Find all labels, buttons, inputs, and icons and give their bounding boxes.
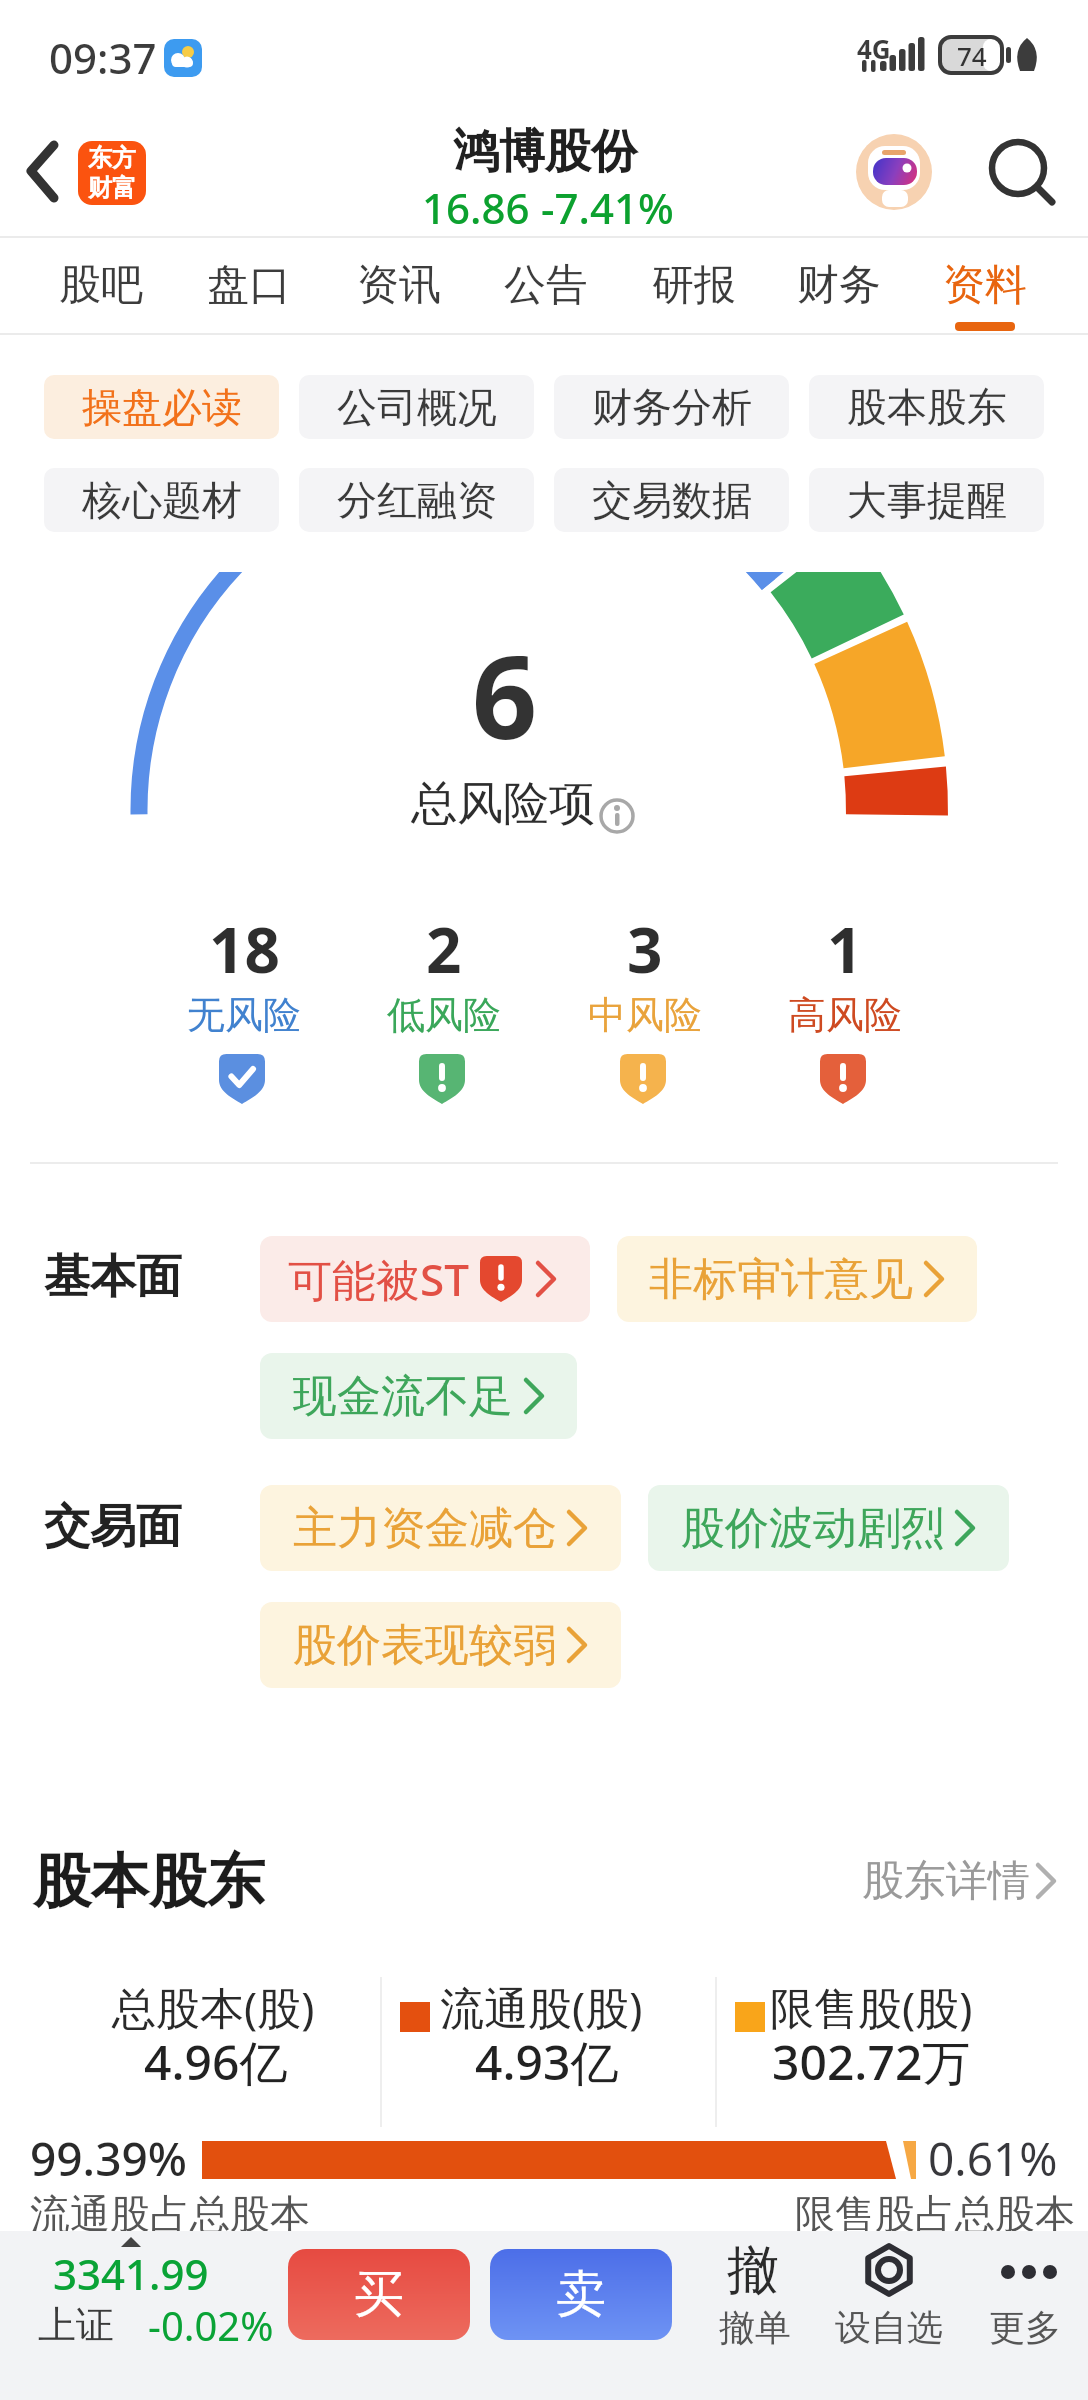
staticText: 鸿博股份 xyxy=(453,123,637,181)
staticText: 上证 xyxy=(38,2301,114,2349)
button[interactable]: 公司概况 xyxy=(299,375,534,439)
staticText: 设自选 xyxy=(835,2305,943,2350)
staticText: 撤单 xyxy=(719,2305,791,2350)
staticText: 操盘必读 xyxy=(82,382,242,432)
button[interactable]: 大事提醒 xyxy=(809,468,1044,532)
staticText: 09:37 xyxy=(49,29,157,86)
button[interactable]: 交易数据 xyxy=(554,468,789,532)
staticText: 可能被ST xyxy=(288,1249,469,1309)
staticText: 0.61% xyxy=(928,2127,1058,2190)
staticText: 限售股(股) xyxy=(770,1977,973,2037)
staticText: 总股本(股) xyxy=(112,1977,315,2037)
button[interactable]: 操盘必读 xyxy=(44,375,279,439)
staticText: 股本股东 xyxy=(847,382,1007,432)
staticText: 74 xyxy=(957,38,987,73)
button[interactable] xyxy=(830,2240,950,2360)
button[interactable]: 股本股东 xyxy=(809,375,1044,439)
button[interactable] xyxy=(24,142,64,202)
staticText: 股本股东 xyxy=(33,1845,265,1918)
staticText: -0.02% xyxy=(148,2298,274,2352)
staticText: 资料 xyxy=(943,259,1027,312)
button[interactable] xyxy=(20,2240,270,2360)
button[interactable]: 资讯 xyxy=(329,244,469,326)
button[interactable]: 买 xyxy=(288,2249,470,2340)
button[interactable] xyxy=(260,1602,621,1688)
staticText: 中风险 xyxy=(588,991,702,1039)
staticText: 股东详情 xyxy=(862,1855,1030,1908)
button[interactable]: 财务分析 xyxy=(554,375,789,439)
staticText: 资讯 xyxy=(357,259,441,312)
staticText: 交易面 xyxy=(44,1498,182,1556)
button[interactable] xyxy=(648,1485,1009,1571)
button[interactable] xyxy=(617,1236,977,1322)
staticText: 限售股占总股本 xyxy=(795,2189,1075,2239)
staticText: 总风险项 xyxy=(411,775,595,833)
staticText: 2 xyxy=(426,907,462,991)
button[interactable]: 核心题材 xyxy=(44,468,279,532)
button[interactable] xyxy=(975,2240,1085,2360)
staticText: 6 xyxy=(472,617,538,772)
staticText: 财富 xyxy=(88,173,136,203)
staticText: 主力资金减仓 xyxy=(293,1501,557,1556)
staticText: 股价波动剧烈 xyxy=(681,1501,945,1556)
staticText: 18 xyxy=(209,907,280,991)
button[interactable]: 财务 xyxy=(769,244,909,326)
staticText: 撤 xyxy=(727,2238,779,2304)
staticText: 基本面 xyxy=(44,1248,182,1306)
button[interactable] xyxy=(700,2240,810,2360)
staticText: 大事提醒 xyxy=(847,475,1007,525)
staticText: 流通股(股) xyxy=(440,1977,643,2037)
button[interactable] xyxy=(260,1236,590,1322)
button[interactable] xyxy=(856,134,932,210)
button[interactable]: 公告 xyxy=(476,244,616,326)
button[interactable]: 资料 xyxy=(915,244,1055,326)
staticText: 更多 xyxy=(989,2305,1061,2350)
staticText: 财务分析 xyxy=(592,382,752,432)
staticText: 无风险 xyxy=(187,991,301,1039)
staticText: 低风险 xyxy=(387,991,501,1039)
button[interactable] xyxy=(260,1353,577,1439)
staticText: 财务 xyxy=(797,259,881,312)
staticText: 东方 xyxy=(88,143,136,173)
staticText: 3341.99 xyxy=(53,2245,209,2302)
staticText: 盘口 xyxy=(207,259,291,312)
staticText: 4.96亿 xyxy=(144,2029,288,2095)
button[interactable]: 分红融资 xyxy=(299,468,534,532)
button[interactable]: 卖 xyxy=(490,2249,672,2340)
button[interactable] xyxy=(260,1485,621,1571)
button[interactable] xyxy=(988,138,1056,206)
staticText: 公告 xyxy=(504,259,588,312)
staticText: 买 xyxy=(354,2263,404,2326)
staticText: 4G xyxy=(857,31,891,66)
staticText: 卖 xyxy=(556,2263,606,2326)
button[interactable]: 研报 xyxy=(624,244,764,326)
staticText: 16.86 xyxy=(422,179,530,236)
staticText: 公司概况 xyxy=(337,382,497,432)
staticText: 分红融资 xyxy=(337,475,497,525)
staticText: -7.41% xyxy=(541,179,674,236)
staticText: 非标审计意见 xyxy=(649,1252,913,1307)
staticText: 现金流不足 xyxy=(293,1369,513,1424)
staticText: 研报 xyxy=(652,259,736,312)
staticText: 股价表现较弱 xyxy=(293,1618,557,1673)
button[interactable]: 东方 xyxy=(78,141,146,205)
staticText: 3 xyxy=(627,907,663,991)
staticText: 高风险 xyxy=(788,991,902,1039)
staticText: 1 xyxy=(827,907,863,991)
staticText: 股吧 xyxy=(59,259,143,312)
staticText: 流通股占总股本 xyxy=(30,2189,310,2239)
staticText: 302.72万 xyxy=(772,2029,971,2095)
staticText: 99.39% xyxy=(30,2127,187,2190)
button[interactable]: 盘口 xyxy=(179,244,319,326)
staticText: 核心题材 xyxy=(82,475,242,525)
staticText: 4.93亿 xyxy=(475,2029,619,2095)
button[interactable] xyxy=(855,1853,1060,1909)
button[interactable]: 股吧 xyxy=(31,244,171,326)
staticText: 交易数据 xyxy=(592,475,752,525)
